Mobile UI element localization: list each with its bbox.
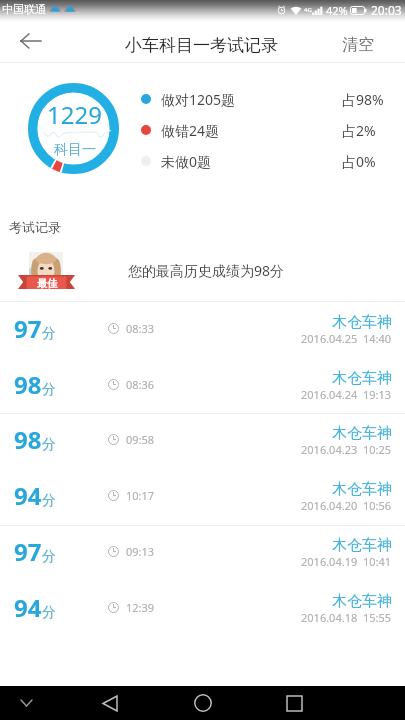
staticText: 木仓车神 — [332, 424, 392, 443]
staticText: 2016.04.19 10:41 — [301, 554, 392, 569]
button[interactable]: 94 — [0, 469, 405, 525]
staticText: 分 — [42, 436, 56, 454]
staticText: 2016.04.24 19:13 — [301, 387, 392, 402]
staticText: 做错24题 — [161, 121, 220, 140]
staticText: 98 — [14, 423, 42, 456]
button[interactable]: Back — [90, 686, 130, 720]
button[interactable]: 98 — [0, 413, 405, 469]
staticText: 木仓车神 — [332, 369, 392, 388]
staticText: 分 — [42, 492, 56, 510]
staticText: 考试记录 — [9, 219, 61, 235]
staticText: 98 — [14, 368, 42, 401]
staticText: 占98% — [342, 90, 384, 109]
staticText: 分 — [42, 548, 56, 566]
button[interactable]: 97 — [0, 525, 405, 581]
staticText: 97 — [14, 535, 42, 568]
staticText: 未做0题 — [161, 152, 212, 171]
staticText: 09:58 — [126, 432, 155, 447]
staticText: 42% — [326, 3, 348, 18]
staticText: 94 — [14, 591, 42, 624]
staticText: 清空 — [342, 35, 374, 55]
staticText: 您的最高历史成绩为98分 — [128, 261, 285, 280]
staticText: 做对1205题 — [161, 90, 236, 109]
staticText: 占0% — [342, 152, 376, 171]
staticText: 1229 — [47, 98, 102, 131]
staticText: 木仓车神 — [332, 592, 392, 611]
staticText: 10:17 — [126, 488, 155, 503]
staticText: 中国联通 — [2, 2, 46, 16]
staticText: 97 — [14, 312, 42, 345]
staticText: 科目一 — [54, 141, 96, 159]
staticText: 12:39 — [126, 600, 155, 615]
staticText: 4G — [304, 6, 312, 14]
staticText: 木仓车神 — [332, 313, 392, 332]
staticText: 分 — [42, 325, 56, 343]
staticText: 08:36 — [126, 377, 155, 392]
button[interactable]: Hide navigation bar — [10, 687, 42, 719]
staticText: 2016.04.23 10:25 — [301, 442, 392, 457]
button[interactable]: 清空 — [328, 22, 405, 63]
staticText: 分 — [42, 604, 56, 622]
staticText: 小车科目一考试记录 — [125, 35, 278, 56]
button[interactable]: Back — [0, 22, 56, 63]
staticText: 木仓车神 — [332, 536, 392, 555]
staticText: 最佳 — [37, 277, 57, 290]
staticText: 分 — [42, 381, 56, 399]
staticText: 09:13 — [126, 544, 155, 559]
staticText: 2016.04.20 10:56 — [301, 498, 392, 513]
staticText: 2016.04.25 14:40 — [301, 331, 392, 346]
staticText: 木仓车神 — [332, 480, 392, 499]
button[interactable]: 97 — [0, 302, 405, 358]
staticText: 94 — [14, 479, 42, 512]
button[interactable]: 98 — [0, 358, 405, 414]
button[interactable]: Home — [183, 686, 223, 720]
button[interactable]: Recent apps — [274, 686, 314, 720]
staticText: 2016.04.18 15:55 — [301, 610, 392, 625]
staticText: 08:33 — [126, 321, 155, 336]
staticText: 占2% — [342, 121, 376, 140]
button[interactable]: 94 — [0, 581, 405, 637]
staticText: 20:03 — [371, 2, 402, 18]
